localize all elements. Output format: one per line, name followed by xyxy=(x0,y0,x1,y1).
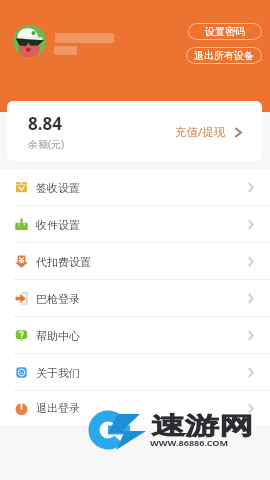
staticText: 签收设置 xyxy=(36,181,80,195)
staticText: 8.84 xyxy=(28,112,62,135)
button[interactable]: Profile avatar xyxy=(13,25,46,58)
staticText: 退出登录 xyxy=(36,401,80,415)
staticText: 余额(元) xyxy=(28,137,64,151)
staticText: WWW.86886.COM xyxy=(150,439,229,449)
button[interactable]: 代扣费设置 xyxy=(0,243,270,280)
button[interactable]: 巴枪登录 xyxy=(0,280,270,317)
staticText: 帮助中心 xyxy=(36,329,80,343)
staticText: 设置密码 xyxy=(205,25,245,38)
button[interactable]: 收件设置 xyxy=(0,206,270,243)
button[interactable]: 退出登录 xyxy=(0,391,270,425)
button[interactable]: 签收设置 xyxy=(0,169,270,206)
button[interactable]: 关于我们 xyxy=(0,354,270,391)
button[interactable]: 帮助中心 xyxy=(0,317,270,354)
button[interactable]: 退出所有设备 xyxy=(186,47,262,64)
button[interactable]: 设置密码 xyxy=(188,23,262,40)
staticText: 速游网 xyxy=(151,411,253,441)
button[interactable]: 8.84 xyxy=(7,101,262,161)
staticText: 代扣费设置 xyxy=(36,255,91,269)
staticText: 巴枪登录 xyxy=(36,292,80,306)
staticText: 充值/提现 xyxy=(175,124,226,140)
staticText: 退出所有设备 xyxy=(194,49,254,62)
staticText: 关于我们 xyxy=(36,366,80,380)
staticText: 收件设置 xyxy=(36,218,80,232)
